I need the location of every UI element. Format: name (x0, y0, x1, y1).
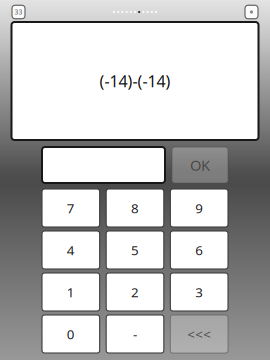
staticText: 2 (131, 283, 139, 301)
button[interactable]: 6 (170, 231, 228, 269)
button[interactable]: Settings (245, 5, 258, 19)
button[interactable]: OK (172, 147, 228, 183)
button[interactable]: 7 (42, 189, 100, 227)
staticText: OK (190, 155, 210, 175)
button[interactable]: - (106, 315, 164, 353)
button[interactable]: Memory 33 (12, 5, 25, 19)
button[interactable]: Entry field (42, 147, 165, 183)
button[interactable]: 0 (42, 315, 100, 353)
staticText: 0 (67, 325, 75, 343)
staticText: (-14)-(-14) (99, 70, 170, 92)
button[interactable]: 4 (42, 231, 100, 269)
staticText: 9 (195, 199, 203, 217)
staticText: 7 (67, 199, 75, 217)
button[interactable]: 8 (106, 189, 164, 227)
staticText: 8 (131, 199, 139, 217)
staticText: 6 (195, 241, 203, 259)
staticText: - (133, 325, 137, 343)
button[interactable]: 2 (106, 273, 164, 311)
staticText: 1 (67, 283, 75, 301)
staticText: 5 (131, 241, 139, 259)
button[interactable]: 5 (106, 231, 164, 269)
button[interactable]: <<< (170, 315, 228, 353)
staticText: 3 (195, 283, 203, 301)
button[interactable]: 9 (170, 189, 228, 227)
staticText: 33 (14, 8, 22, 16)
staticText: <<< (187, 325, 211, 343)
button[interactable]: 1 (42, 273, 100, 311)
staticText: 4 (67, 241, 75, 259)
button[interactable]: 3 (170, 273, 228, 311)
